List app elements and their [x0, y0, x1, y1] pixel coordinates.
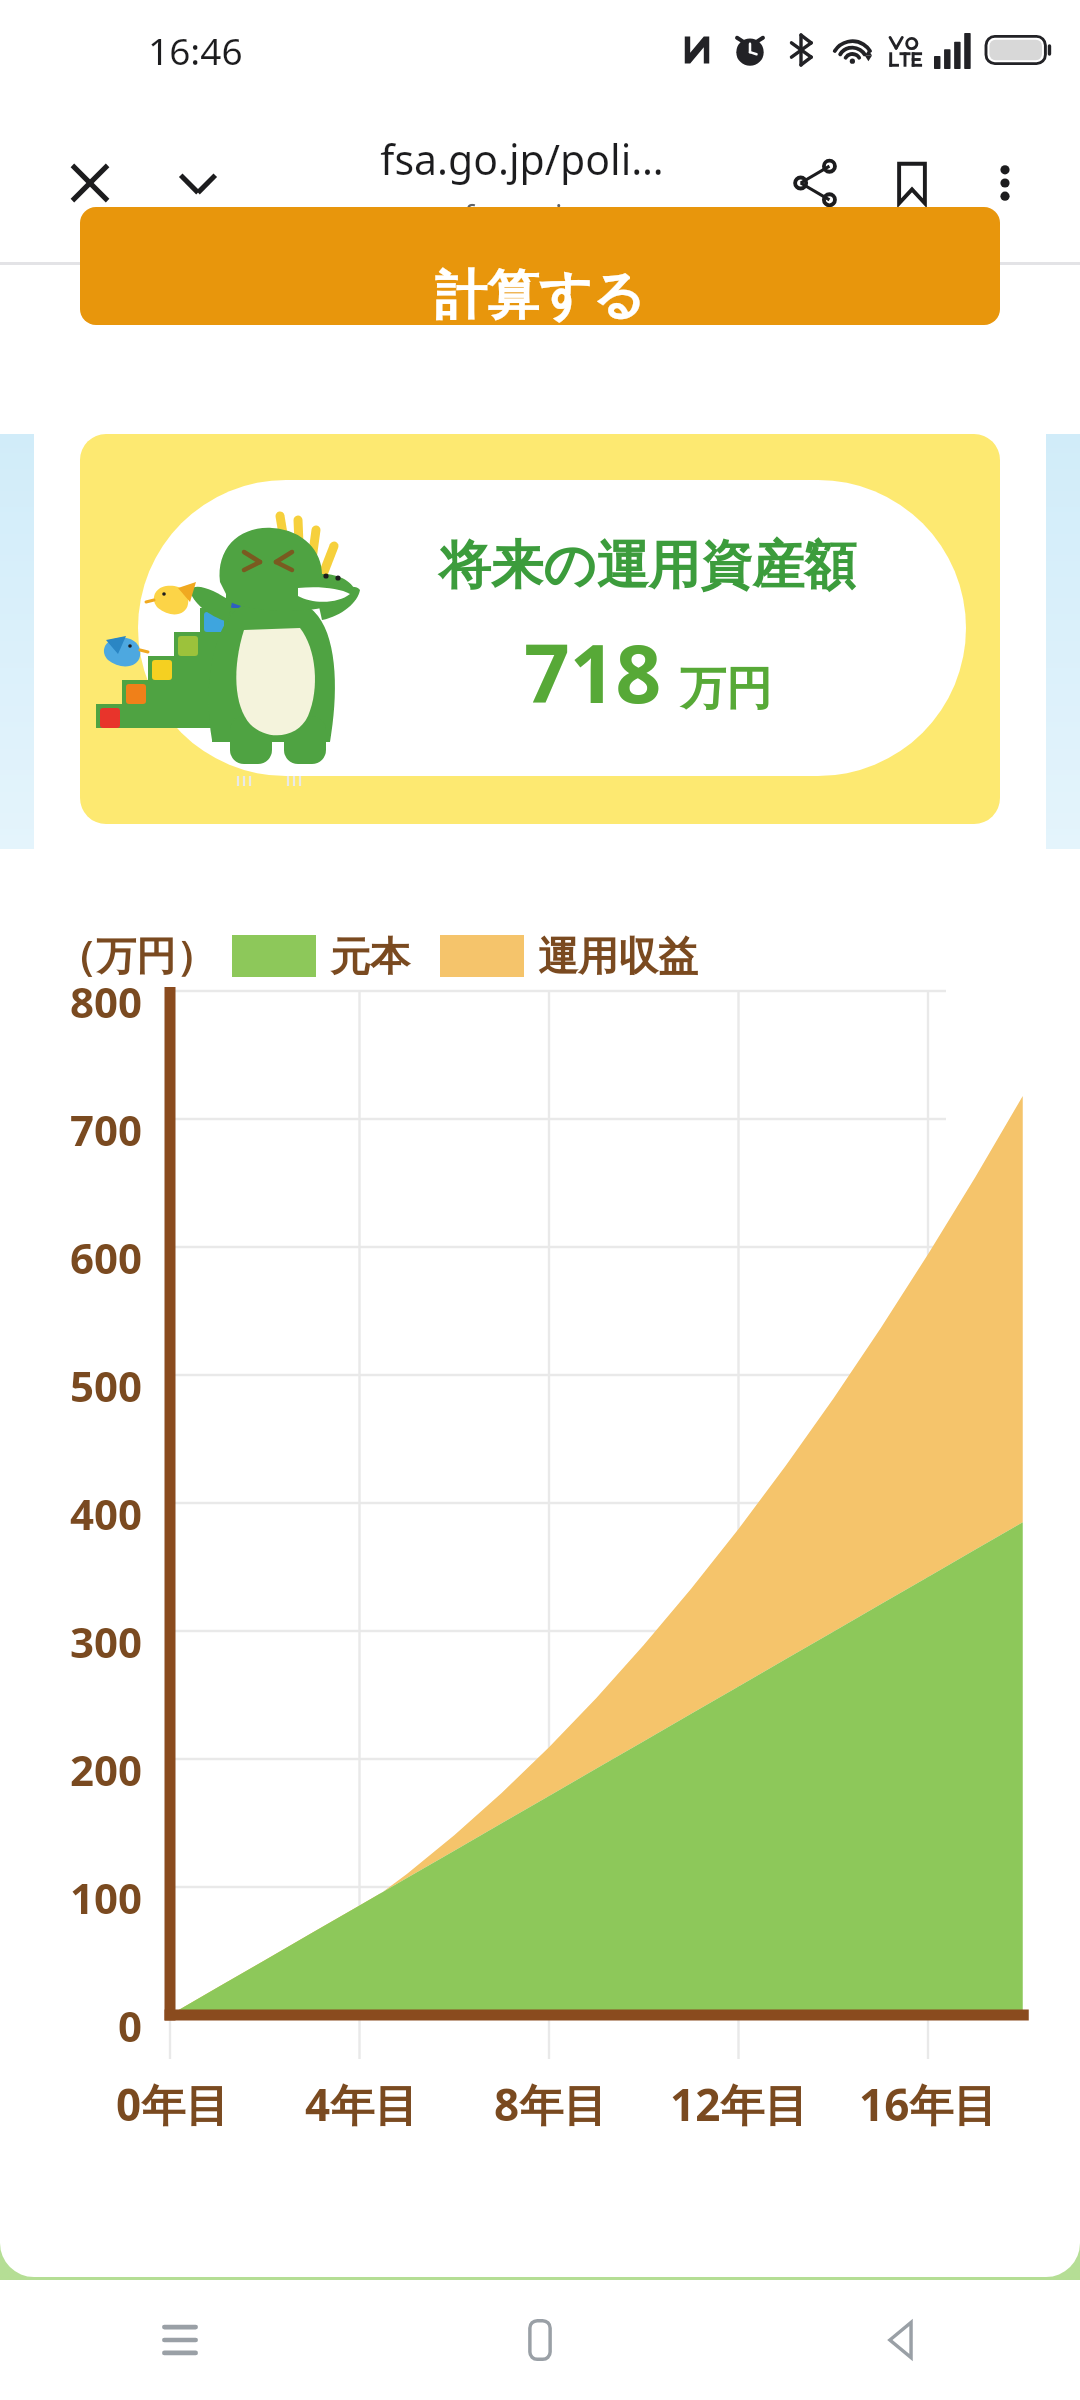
staticText: 16年目 — [859, 2074, 998, 2134]
button[interactable]: Close — [42, 135, 138, 231]
staticText: 16:46 — [148, 25, 243, 75]
staticText: 200 — [69, 1741, 142, 1798]
staticText: 万円 — [680, 660, 772, 718]
button[interactable]: Bookmark — [864, 135, 960, 231]
button[interactable]: Collapse — [150, 135, 246, 231]
button[interactable]: 計算する — [80, 207, 1000, 325]
staticText: 400 — [69, 1485, 142, 1542]
button[interactable]: Recent apps — [0, 2280, 360, 2400]
staticText: 運用収益 — [538, 931, 698, 981]
staticText: 800 — [69, 973, 142, 1030]
staticText: 計算する — [435, 263, 646, 325]
staticText: 8年目 — [494, 2074, 608, 2134]
staticText: 300 — [69, 1613, 142, 1670]
staticText: 12年目 — [670, 2074, 809, 2134]
button[interactable]: fsa.go.jp/poli… — [380, 131, 664, 234]
staticText: fsa.go.jp/poli… — [380, 131, 664, 187]
button[interactable]: More options — [960, 138, 1050, 228]
button[interactable]: Share — [768, 135, 864, 231]
staticText: 将来の運用資産額 — [439, 533, 857, 599]
button[interactable]: Back — [720, 2280, 1080, 2400]
staticText: （万円） — [56, 931, 216, 981]
staticText: 600 — [69, 1229, 142, 1286]
staticText: 500 — [69, 1357, 142, 1414]
staticText: 700 — [69, 1101, 142, 1158]
staticText: 718 — [524, 617, 662, 726]
staticText: fsa.go.jp — [464, 195, 581, 234]
staticText: 4年目 — [305, 2074, 419, 2134]
button[interactable]: Home — [360, 2280, 720, 2400]
staticText: 100 — [69, 1869, 142, 1926]
staticText: 0年目 — [116, 2074, 230, 2134]
staticText: 元本 — [330, 931, 410, 981]
staticText: 0 — [117, 1997, 142, 2054]
